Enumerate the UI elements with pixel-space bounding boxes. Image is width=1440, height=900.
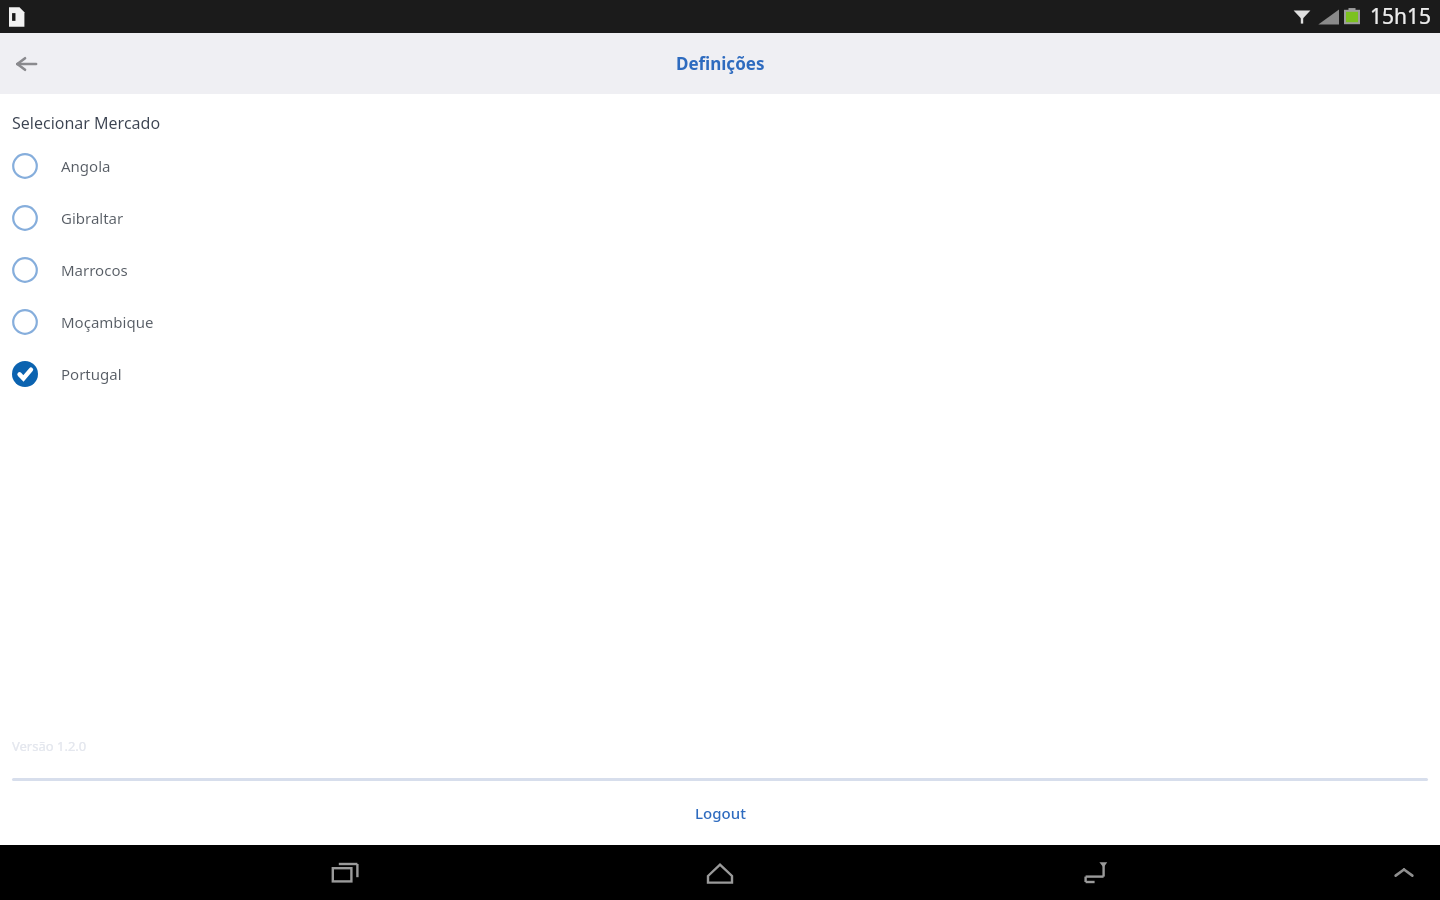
staticText: 15h15 — [1370, 2, 1432, 31]
button[interactable]: Expand — [1384, 853, 1424, 893]
button[interactable]: Recents — [318, 845, 374, 900]
button[interactable]: Back — [1066, 845, 1122, 900]
button[interactable]: Gibraltar — [0, 205, 1440, 231]
staticText: Marrocos — [61, 260, 128, 280]
staticText: Angola — [61, 156, 111, 176]
staticText: Logout — [695, 803, 746, 823]
button[interactable]: Portugal — [0, 361, 1440, 387]
staticText: Selecionar Mercado — [12, 112, 161, 134]
button[interactable]: Home — [692, 845, 748, 900]
button[interactable]: Marrocos — [0, 257, 1440, 283]
staticText: Definições — [676, 52, 765, 75]
button[interactable]: Logout — [0, 781, 1440, 845]
staticText: Gibraltar — [61, 208, 124, 228]
button[interactable]: Moçambique — [0, 309, 1440, 335]
staticText: Portugal — [61, 364, 122, 384]
button[interactable]: Back — [0, 38, 52, 90]
staticText: Versão 1.2.0 — [12, 737, 87, 755]
staticText: Moçambique — [61, 312, 154, 332]
button[interactable]: Angola — [0, 153, 1440, 179]
